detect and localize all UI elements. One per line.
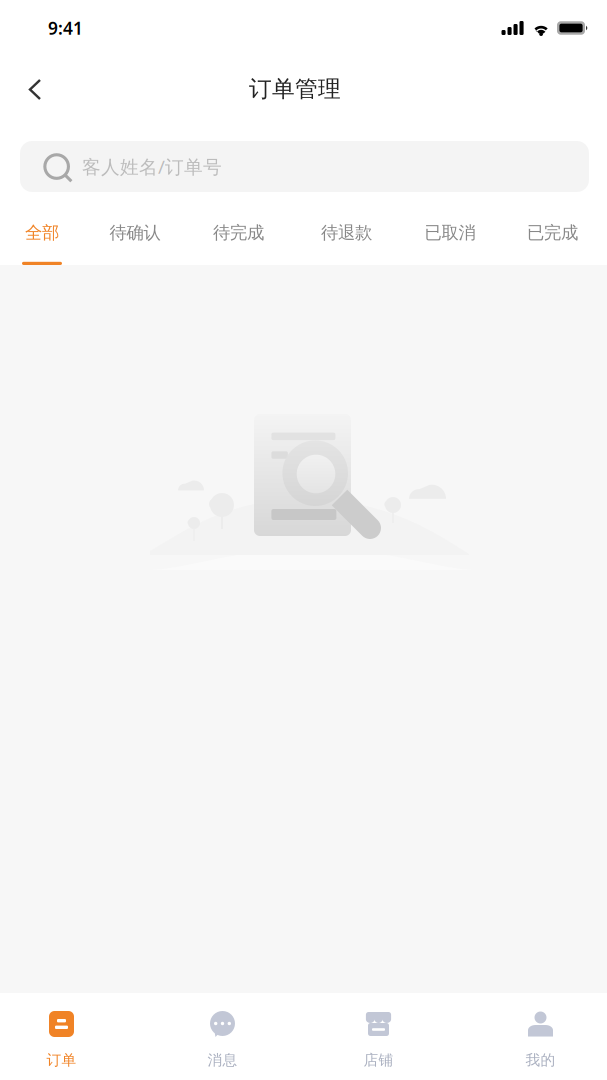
staticText: 全部 [25,222,59,243]
staticText: 订单管理 [249,75,341,103]
button[interactable]: 全部 [22,192,62,265]
staticText: 已取消 [424,222,475,243]
staticText: 订单 [46,1051,76,1069]
button[interactable]: Back [0,56,62,118]
button[interactable]: 已完成 [527,192,578,265]
staticText: 消息 [207,1051,237,1069]
button[interactable]: 我的 [490,993,590,1080]
button[interactable]: 客人姓名/订单号 [20,141,589,192]
button[interactable]: 订单 [11,993,111,1080]
staticText: 9:41 [48,16,83,39]
staticText: 待完成 [213,222,264,243]
button[interactable]: 已取消 [424,192,475,265]
button[interactable]: 消息 [172,993,272,1080]
staticText: 店铺 [363,1051,393,1069]
button[interactable]: 待完成 [213,192,264,265]
staticText: 待确认 [109,222,160,243]
button[interactable]: 待确认 [109,192,160,265]
staticText: 待退款 [321,222,372,243]
button[interactable]: 店铺 [328,993,428,1080]
staticText: 客人姓名/订单号 [82,154,222,179]
button[interactable]: 待退款 [321,192,372,265]
staticText: 已完成 [527,222,578,243]
staticText: 我的 [525,1051,555,1069]
